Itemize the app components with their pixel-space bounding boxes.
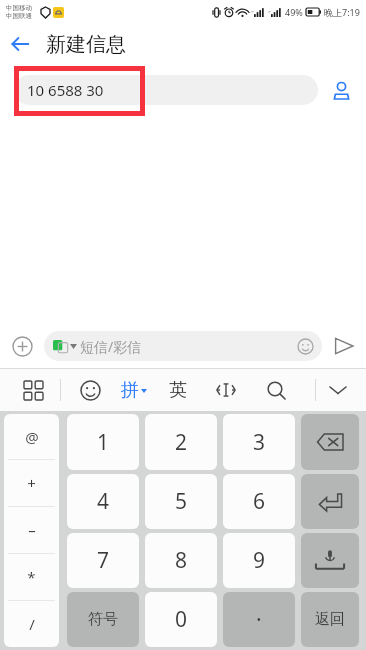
- staticText: 8: [175, 546, 188, 575]
- staticText: ·: [256, 605, 262, 634]
- staticText: –: [28, 520, 36, 540]
- staticText: 拼: [121, 379, 139, 402]
- button[interactable]: 8: [145, 533, 217, 588]
- staticText: @: [25, 427, 39, 447]
- button[interactable]: 4: [67, 474, 139, 529]
- button[interactable]: Emoji: [71, 371, 109, 409]
- staticText: 1: [97, 428, 110, 457]
- staticText: 0: [175, 605, 188, 634]
- staticText: /: [29, 614, 35, 634]
- staticText: 5: [175, 487, 188, 516]
- button[interactable]: *: [4, 554, 59, 600]
- button[interactable]: 3: [223, 414, 295, 470]
- staticText: 晚上7:19: [324, 6, 360, 18]
- staticText: 49%: [285, 6, 303, 18]
- staticText: 英: [169, 379, 187, 402]
- staticText: 返回: [315, 610, 345, 629]
- staticText: 9: [253, 546, 266, 575]
- staticText: 6: [253, 487, 266, 516]
- staticText: +: [27, 473, 36, 493]
- button[interactable]: Keyboard layouts: [14, 371, 52, 409]
- button[interactable]: 短信/彩信: [44, 331, 322, 361]
- staticText: 短信/彩信: [80, 337, 142, 356]
- button[interactable]: –: [4, 507, 59, 553]
- staticText: 3: [253, 428, 266, 457]
- staticText: 中国移动: [6, 4, 32, 12]
- button[interactable]: 2: [145, 414, 217, 470]
- button[interactable]: Back: [0, 24, 40, 64]
- button[interactable]: Space: [301, 533, 359, 588]
- staticText: 符号: [88, 610, 118, 629]
- button[interactable]: 10 6588 30: [14, 75, 318, 105]
- button[interactable]: Hide keyboard: [316, 369, 360, 411]
- button[interactable]: 6: [223, 474, 295, 529]
- button[interactable]: Cursor move: [209, 373, 243, 407]
- staticText: *: [27, 567, 36, 587]
- button[interactable]: 0: [145, 592, 217, 647]
- button[interactable]: Search: [259, 373, 293, 407]
- button[interactable]: 1: [67, 414, 139, 470]
- staticText: 2: [175, 428, 188, 457]
- button[interactable]: Backspace: [301, 414, 359, 470]
- button[interactable]: Return: [301, 592, 359, 647]
- button[interactable]: Select contact: [324, 73, 358, 107]
- button[interactable]: Send: [322, 324, 366, 368]
- button[interactable]: @: [4, 414, 59, 459]
- staticText: ″: [268, 9, 271, 17]
- button[interactable]: 5: [145, 474, 217, 529]
- button[interactable]: Add attachment: [0, 324, 44, 368]
- staticText: ″: [251, 9, 254, 17]
- staticText: 7: [97, 546, 110, 575]
- staticText: 4: [97, 487, 110, 516]
- button[interactable]: ·: [223, 592, 295, 647]
- staticText: 10 6588 30: [27, 80, 104, 100]
- button[interactable]: 9: [223, 533, 295, 588]
- staticText: 新建信息: [46, 32, 126, 57]
- button[interactable]: 英: [169, 379, 187, 402]
- button[interactable]: Enter: [301, 474, 359, 529]
- button[interactable]: 拼: [121, 379, 147, 402]
- button[interactable]: 符号: [67, 592, 139, 647]
- staticText: 中国联通: [6, 12, 32, 20]
- button[interactable]: /: [4, 601, 59, 647]
- button[interactable]: 7: [67, 533, 139, 588]
- button[interactable]: +: [4, 460, 59, 506]
